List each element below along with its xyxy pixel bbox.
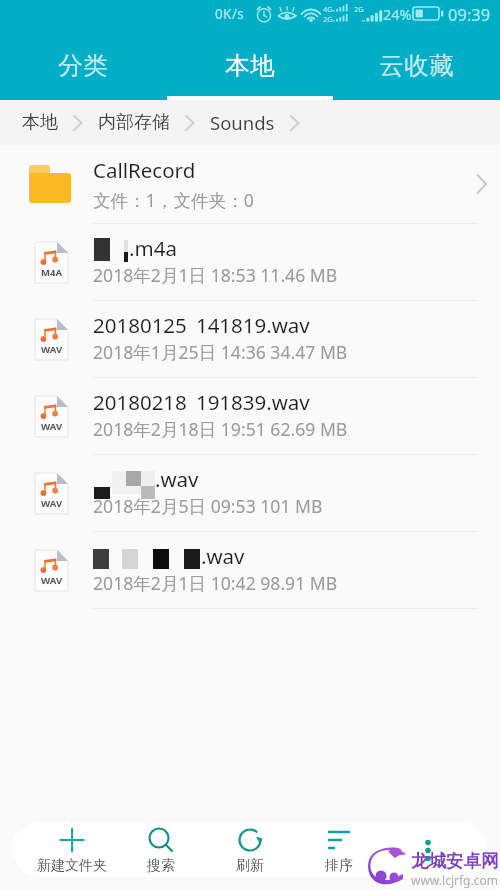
button[interactable]: 本地 xyxy=(22,111,58,134)
staticText: 2G xyxy=(354,4,364,14)
button[interactable]: 刷新 xyxy=(206,822,294,877)
button[interactable]: Sounds xyxy=(210,110,275,135)
staticText: 本地 xyxy=(22,111,58,134)
staticText: Sounds xyxy=(210,110,275,135)
button[interactable]: 新建文件夹 xyxy=(28,822,116,877)
button[interactable]: CallRecord xyxy=(0,145,500,223)
staticText: 本地 xyxy=(225,50,275,81)
button[interactable]: 分类 xyxy=(0,30,166,100)
staticText: www.lcjrfg.com xyxy=(411,872,498,888)
button[interactable]: WAV xyxy=(0,378,500,454)
staticText: 24% xyxy=(383,4,412,24)
staticText: WAV xyxy=(41,420,63,433)
staticText: 2G xyxy=(323,14,333,24)
staticText: 20180125_141819.wav xyxy=(93,311,310,334)
staticText: 2018年2月18日 19:51 62.69 MB xyxy=(93,417,348,441)
staticText: 2018年1月25日 14:36 34.47 MB xyxy=(93,340,348,364)
button[interactable]: 搜索 xyxy=(117,822,205,877)
button[interactable]: More options xyxy=(384,822,472,877)
staticText: 分类 xyxy=(58,50,108,81)
button[interactable]: 本地 xyxy=(166,30,333,100)
staticText: 09:39 xyxy=(448,3,491,25)
staticText: WAV xyxy=(41,343,63,356)
staticText: .wav xyxy=(201,542,245,565)
staticText: .wav xyxy=(155,465,199,488)
staticText: WAV xyxy=(41,497,63,510)
button[interactable]: 云收藏 xyxy=(333,30,500,100)
button[interactable]: Open folder xyxy=(464,145,500,223)
button[interactable]: 排序 xyxy=(295,822,383,877)
staticText: M4A xyxy=(41,266,62,279)
staticText: 云收藏 xyxy=(379,50,454,81)
staticText: 内部存储 xyxy=(98,111,170,134)
staticText: 0K/s xyxy=(215,5,245,23)
staticText: CallRecord xyxy=(93,156,196,184)
staticText: 龙城安卓网 xyxy=(411,850,499,872)
button[interactable]: 内部存储 xyxy=(98,111,170,134)
button[interactable]: WAV xyxy=(0,532,500,608)
staticText: 4G xyxy=(323,4,333,14)
button[interactable]: WAV xyxy=(0,455,500,531)
button[interactable]: WAV xyxy=(0,301,500,377)
staticText: 文件：1，文件夹：0 xyxy=(93,188,254,212)
staticText: 搜索 xyxy=(147,857,175,875)
staticText: 2018年2月1日 18:53 11.46 MB xyxy=(93,263,338,287)
button[interactable]: M4A xyxy=(0,224,500,300)
staticText: 20180218_191839.wav xyxy=(93,388,310,411)
staticText: 2018年2月5日 09:53 101 MB xyxy=(93,494,323,518)
staticText: 2018年2月1日 10:42 98.91 MB xyxy=(93,571,338,595)
staticText: WAV xyxy=(41,574,63,587)
staticText: 刷新 xyxy=(236,857,264,875)
staticText: 排序 xyxy=(325,857,353,875)
staticText: .m4a xyxy=(129,234,177,257)
staticText: 新建文件夹 xyxy=(37,857,107,875)
